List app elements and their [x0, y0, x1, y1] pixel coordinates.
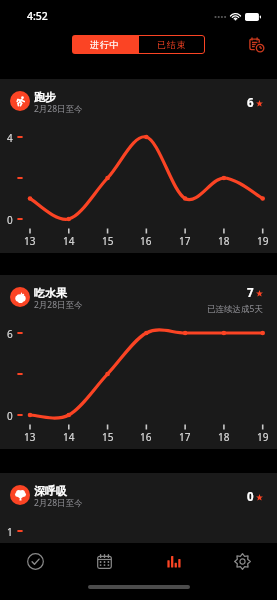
staticText: 14	[63, 430, 75, 442]
staticText: 深呼吸	[34, 484, 67, 498]
button[interactable]: Calendar	[70, 543, 139, 579]
staticText: 已结束	[157, 39, 187, 50]
button[interactable]: 跑步	[0, 79, 277, 253]
button[interactable]: Statistics	[139, 543, 208, 579]
staticText: 19	[257, 234, 269, 246]
staticText: 6	[247, 95, 254, 111]
staticText: 已连续达成5天	[207, 303, 263, 315]
staticText: 16	[140, 234, 152, 246]
button[interactable]: Tasks	[0, 543, 70, 579]
staticText: 14	[63, 234, 75, 246]
button[interactable]: History	[244, 32, 268, 56]
button[interactable]: 深呼吸	[0, 473, 277, 600]
staticText: 4:52	[27, 9, 48, 23]
staticText: 吃水果	[34, 286, 67, 300]
staticText: 15	[102, 430, 114, 442]
staticText: 2月28日至今	[34, 103, 83, 115]
staticText: 17	[179, 234, 191, 246]
staticText: 1	[7, 525, 13, 537]
staticText: 13	[24, 430, 36, 442]
staticText: 0	[247, 489, 254, 505]
staticText: 16	[140, 430, 152, 442]
staticText: 6	[7, 327, 13, 339]
staticText: 4	[7, 131, 13, 143]
staticText: 13	[24, 234, 36, 246]
staticText: 18	[218, 430, 230, 442]
staticText: 进行中	[90, 39, 120, 50]
staticText: 17	[179, 430, 191, 442]
staticText: 18	[218, 234, 230, 246]
button[interactable]: 吃水果	[0, 275, 277, 449]
staticText: 0	[7, 213, 13, 225]
staticText: 跑步	[34, 90, 56, 104]
button[interactable]: Settings	[208, 543, 277, 579]
staticText: 2月28日至今	[34, 299, 83, 311]
staticText: 2月28日至今	[34, 497, 83, 509]
staticText: 7	[247, 285, 254, 301]
staticText: 0	[7, 409, 13, 421]
button[interactable]: 进行中	[72, 35, 138, 54]
staticText: 19	[257, 430, 269, 442]
staticText: 15	[102, 234, 114, 246]
button[interactable]: 已结束	[138, 35, 205, 54]
